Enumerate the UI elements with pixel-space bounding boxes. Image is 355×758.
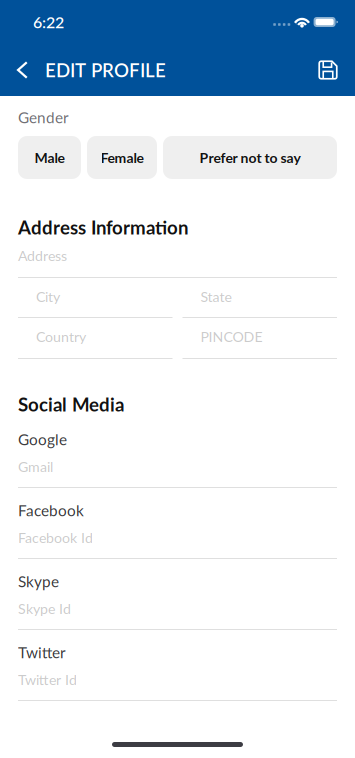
staticText: Facebook — [18, 501, 84, 519]
staticText: Skype — [18, 572, 59, 590]
staticText: Gmail — [18, 458, 53, 475]
staticText: Twitter Id — [18, 671, 77, 688]
staticText: Country — [36, 328, 86, 345]
button[interactable]: Back — [0, 44, 45, 96]
staticText: 6:22 — [33, 12, 64, 32]
staticText: Address Information — [18, 216, 189, 238]
staticText: Address — [18, 247, 67, 264]
staticText: Prefer not to say — [199, 149, 300, 166]
staticText: Female — [100, 149, 143, 166]
button[interactable]: Female — [87, 136, 157, 179]
staticText: Gender — [18, 108, 69, 126]
button[interactable]: Save — [301, 44, 355, 96]
staticText: Facebook Id — [18, 529, 93, 546]
staticText: Skype Id — [18, 600, 71, 617]
button[interactable]: Prefer not to say — [163, 136, 337, 179]
staticText: State — [200, 288, 231, 305]
staticText: Twitter — [18, 643, 66, 661]
staticText: PINCODE — [200, 328, 262, 345]
staticText: Male — [34, 149, 64, 166]
button[interactable]: Male — [18, 136, 81, 179]
staticText: EDIT PROFILE — [45, 59, 166, 81]
staticText: Social Media — [18, 393, 124, 415]
staticText: City — [36, 288, 60, 305]
staticText: Google — [18, 430, 67, 448]
